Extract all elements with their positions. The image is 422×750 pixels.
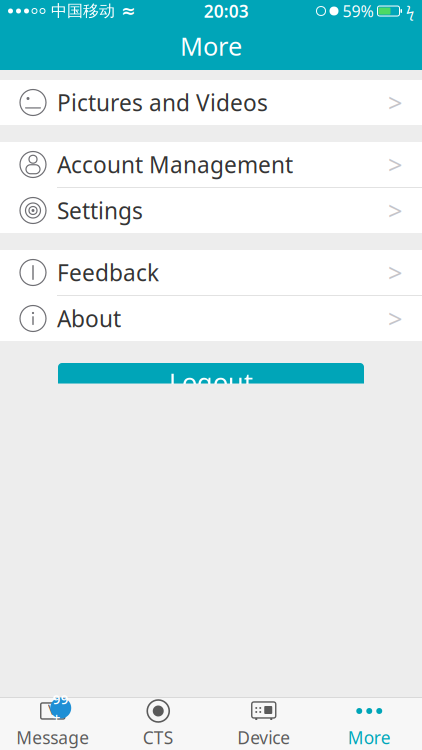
staticText: More: [180, 29, 242, 63]
staticText: >: [388, 86, 402, 119]
staticText: Device: [237, 726, 290, 749]
staticText: >: [388, 302, 402, 335]
staticText: >: [388, 256, 402, 289]
button[interactable]: CTS: [105, 699, 211, 749]
staticText: About: [57, 303, 121, 333]
button[interactable]: Account Management: [0, 142, 422, 188]
staticText: >: [388, 194, 402, 227]
staticText: Feedback: [57, 257, 159, 287]
staticText: 20:03: [204, 0, 249, 22]
staticText: >: [388, 148, 402, 181]
staticText: \/: [48, 699, 58, 719]
button[interactable]: About: [0, 296, 422, 341]
staticText: Pictures and Videos: [57, 87, 268, 117]
button[interactable]: Pictures and Videos: [0, 80, 422, 125]
staticText: ≈: [121, 1, 136, 21]
staticText: Message: [16, 726, 89, 749]
staticText: 59%: [342, 0, 373, 22]
button[interactable]: More: [316, 699, 422, 749]
button[interactable]: \/: [0, 699, 105, 749]
staticText: Settings: [57, 195, 143, 225]
button[interactable]: Logout: [0, 341, 422, 401]
staticText: More: [348, 726, 391, 749]
staticText: 99+: [53, 690, 69, 726]
staticText: 中国移动: [51, 1, 115, 21]
staticText: CTS: [143, 726, 174, 749]
button[interactable]: Settings: [0, 188, 422, 233]
button[interactable]: Feedback: [0, 250, 422, 296]
staticText: Account Management: [57, 149, 293, 179]
button[interactable]: Device: [211, 699, 316, 749]
staticText: Logout: [169, 365, 253, 399]
staticText: ϟ: [406, 1, 414, 21]
